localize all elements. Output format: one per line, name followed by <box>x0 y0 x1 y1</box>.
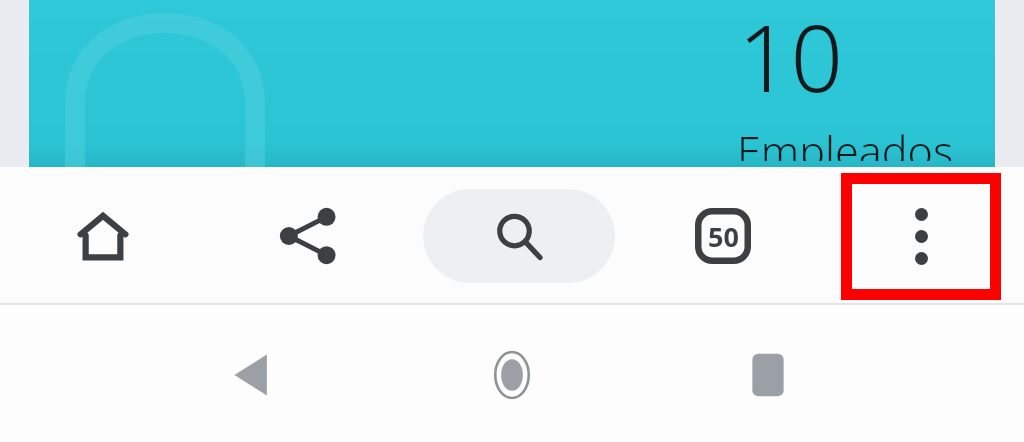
button[interactable]: Home <box>0 167 205 305</box>
button[interactable]: Recent apps <box>708 315 828 435</box>
button[interactable]: Home <box>452 315 572 435</box>
button[interactable]: More options <box>841 173 1001 300</box>
button[interactable]: Tabs, 50 open <box>628 167 818 305</box>
staticText: Empleados <box>737 121 953 161</box>
staticText: 50 <box>708 218 739 255</box>
staticText: 10 <box>737 0 843 119</box>
button[interactable]: Search <box>423 189 615 283</box>
button[interactable]: Share <box>205 167 410 305</box>
button[interactable]: Back <box>195 315 315 435</box>
